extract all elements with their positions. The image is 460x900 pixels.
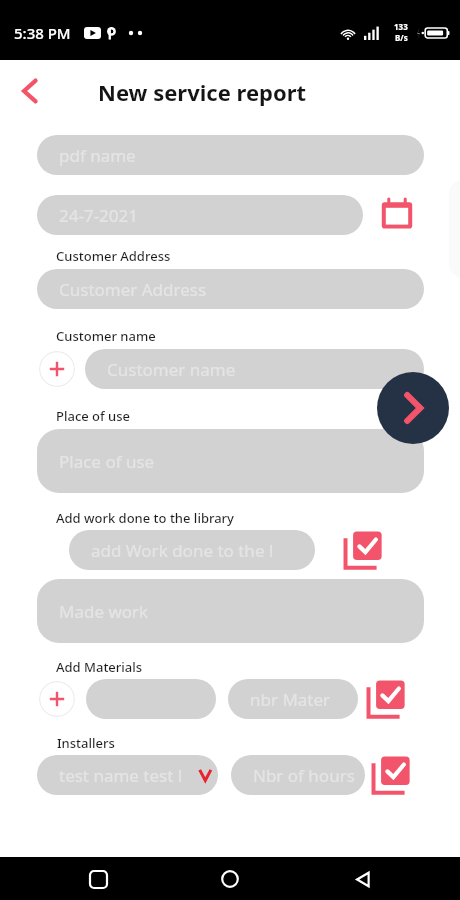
button[interactable]: Customer name [85,349,424,389]
staticText: Add Materials [56,658,143,676]
button[interactable]: Save to library [343,529,385,571]
staticText: Add work done to the library [56,509,234,527]
button[interactable]: Recent apps [80,861,116,897]
button[interactable]: add Work done to the l [69,530,315,570]
staticText: nbr Mater [250,688,331,711]
staticText: Made work [59,600,149,623]
staticText: 5:38 PM [14,23,71,43]
button[interactable]: Made work [37,579,424,643]
staticText: Customer Address [59,278,207,301]
staticText: New service report [98,77,307,107]
button[interactable]: Nbr of hours [231,755,365,795]
button[interactable]: test name test l [37,755,218,795]
button[interactable]: Pick date [377,195,417,235]
staticText: Nbr of hours [253,764,355,787]
staticText: 133 [394,21,408,32]
button[interactable]: Save to library [366,678,408,720]
staticText: 24-7-2021 [59,204,139,227]
button[interactable]: Customer Address [37,269,424,309]
button[interactable]: Home [212,861,248,897]
button[interactable]: Back [344,861,380,897]
staticText: Customer name [107,358,236,381]
staticText: Customer name [56,327,156,345]
button[interactable]: Add [39,681,75,717]
button[interactable]: pdf name [37,135,424,175]
button[interactable]: Back [8,69,52,113]
staticText: B/s [395,32,408,43]
button[interactable]: Save to library [371,754,413,796]
button[interactable]: Add [39,351,75,387]
button[interactable] [86,679,216,719]
button[interactable]: Next [377,372,449,444]
staticText: Installers [57,734,115,752]
staticText: test name test l [59,764,183,787]
staticText: Place of use [56,407,130,425]
button[interactable]: nbr Mater [228,679,358,719]
staticText: Customer Address [56,247,171,265]
staticText: pdf name [59,144,136,167]
button[interactable]: 24-7-2021 [37,195,363,235]
staticText: Place of use [59,450,155,473]
button[interactable]: Place of use [37,429,424,493]
staticText: add Work done to the l [91,539,274,562]
